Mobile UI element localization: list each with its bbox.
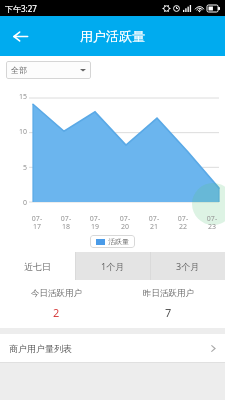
staticText: 10 bbox=[19, 127, 28, 137]
staticText: 1个月 bbox=[101, 260, 125, 272]
staticText: 07- 23 bbox=[201, 214, 223, 231]
button[interactable]: 商户用户量列表 bbox=[0, 334, 225, 362]
staticText: 活跃量 bbox=[108, 237, 129, 246]
staticText: 全部 bbox=[11, 65, 27, 75]
staticText: 5 bbox=[23, 163, 28, 173]
button[interactable]: 3个月 bbox=[151, 252, 225, 280]
staticText: 07- 19 bbox=[84, 214, 106, 231]
staticText: 昨日活跃用户 bbox=[143, 288, 194, 299]
button[interactable]: 今日活跃用户 bbox=[0, 280, 112, 328]
button[interactable]: 近七日 bbox=[0, 252, 75, 280]
button[interactable]: Back bbox=[0, 16, 40, 56]
staticText: 07- 17 bbox=[26, 214, 48, 231]
button[interactable]: 1个月 bbox=[76, 252, 150, 280]
staticText: 今日活跃用户 bbox=[31, 288, 82, 299]
staticText: 07- 18 bbox=[55, 214, 77, 231]
staticText: 07- 22 bbox=[172, 214, 194, 231]
staticText: 7 bbox=[165, 305, 172, 320]
staticText: 15 bbox=[19, 92, 28, 102]
staticText: 2 bbox=[53, 305, 60, 320]
staticText: 3个月 bbox=[176, 260, 200, 272]
button[interactable]: 昨日活跃用户 bbox=[112, 280, 225, 328]
staticText: 0 bbox=[23, 198, 28, 208]
staticText: 用户活跃量 bbox=[80, 28, 145, 44]
button[interactable]: 全部 bbox=[6, 61, 91, 79]
staticText: 近七日 bbox=[24, 261, 51, 272]
staticText: 07- 21 bbox=[143, 214, 165, 231]
staticText: 07- 20 bbox=[114, 214, 136, 231]
staticText: 下午3:27 bbox=[5, 3, 37, 14]
staticText: 商户用户量列表 bbox=[9, 343, 72, 354]
